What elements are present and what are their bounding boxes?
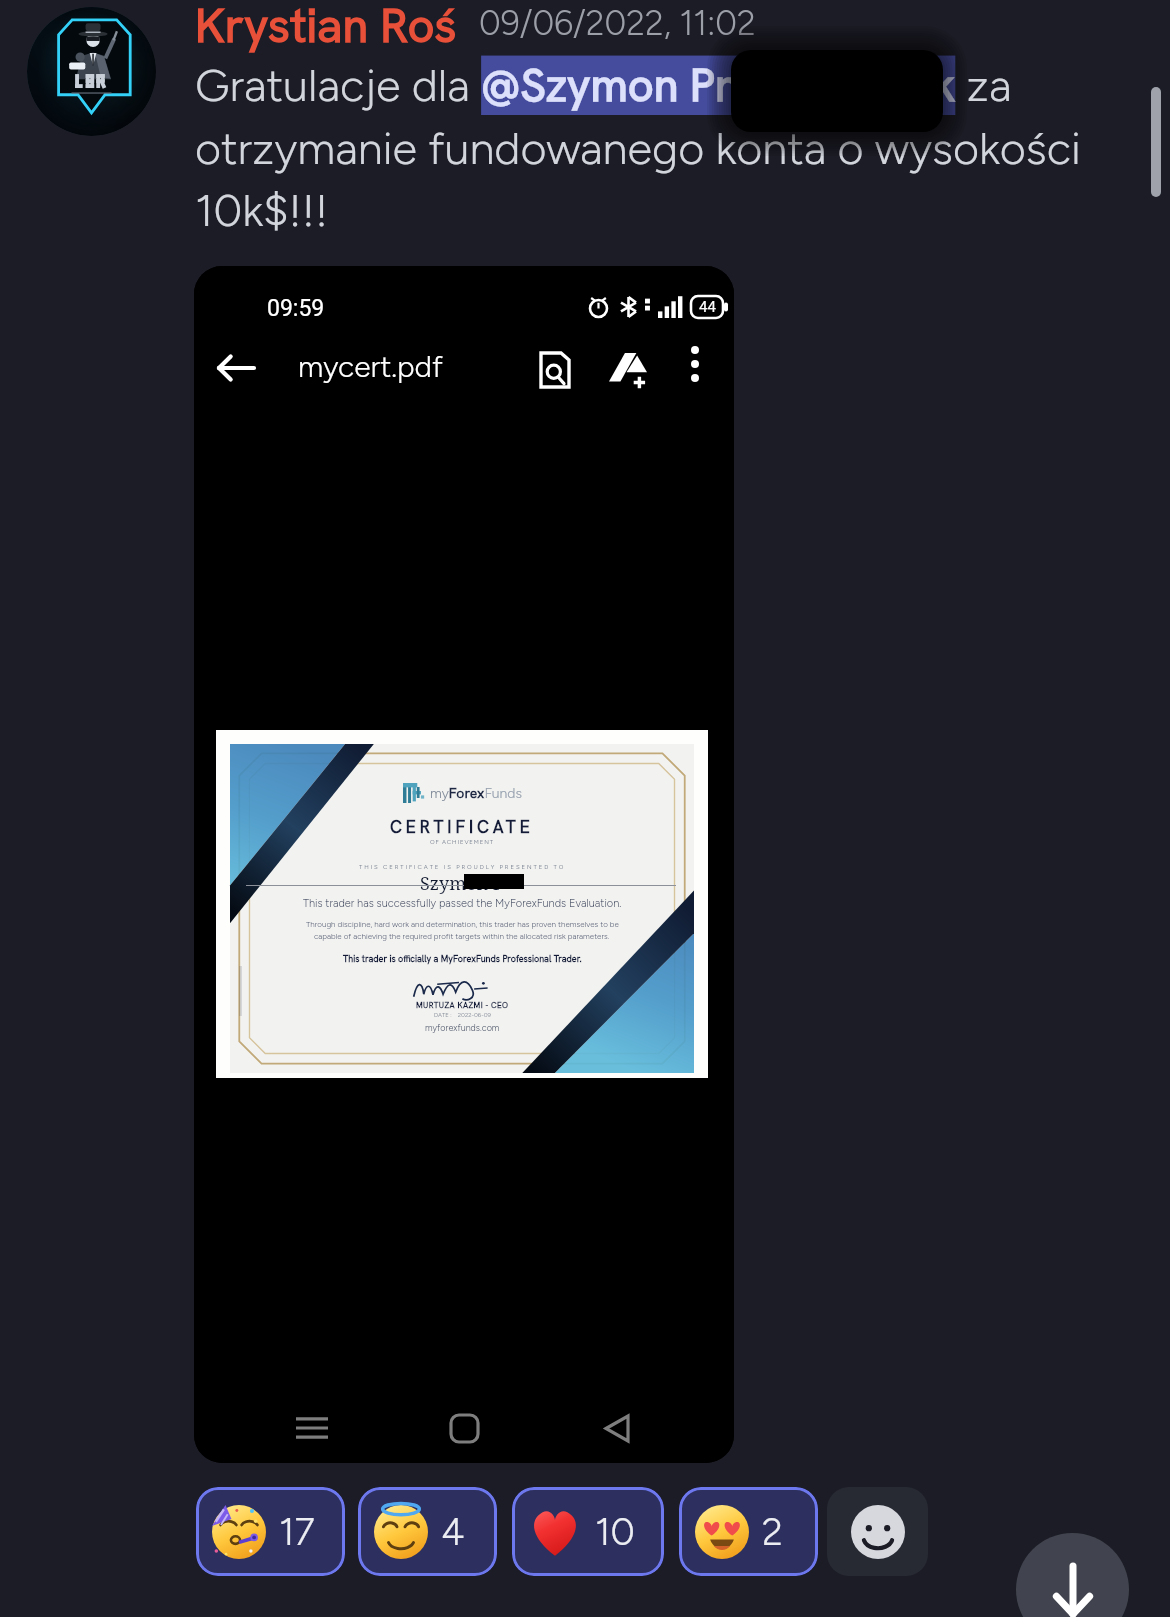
button[interactable]: Scroll to bottom <box>1016 1533 1129 1617</box>
staticText: 09/06/2022, 11:02 <box>479 3 756 44</box>
staticText: 09:59 <box>267 295 325 322</box>
staticText: Krystian Roś <box>195 0 457 56</box>
staticText: 44 <box>699 298 716 316</box>
staticText: mycert.pdf <box>298 348 443 384</box>
staticText: Through discipline, hard work and determ… <box>306 919 619 929</box>
button[interactable]: 17 <box>196 1487 345 1576</box>
button[interactable]: Back <box>582 1393 652 1463</box>
button[interactable]: Recent apps <box>277 1393 347 1463</box>
button[interactable]: Krystian Roś avatar <box>27 7 156 136</box>
button[interactable]: Home <box>429 1393 499 1463</box>
staticText: MURTUZA KAZMI - CEO <box>416 1000 509 1010</box>
button[interactable]: 10 <box>512 1487 664 1576</box>
staticText: 4 <box>441 1509 465 1555</box>
staticText: capable of achieving the required profit… <box>314 931 610 941</box>
staticText: THIS CERTIFICATE IS PROUDLY PRESENTED TO <box>359 863 566 870</box>
staticText: 10 <box>595 1509 635 1555</box>
staticText: OF ACHIEVEMENT <box>430 838 494 845</box>
button[interactable]: Find in document <box>521 336 589 404</box>
staticText: DATE : 2022-06-09 <box>434 1011 491 1018</box>
button[interactable]: Save to Drive <box>594 336 662 404</box>
button[interactable]: Add reaction <box>827 1487 928 1576</box>
staticText: Szymon P <box>420 871 504 896</box>
staticText: CERTIFICATE <box>390 816 534 838</box>
staticText: This trader has successfully passed the … <box>303 897 622 910</box>
button[interactable]: 2 <box>679 1487 818 1576</box>
staticText: Gratulacje dla @Szymon Prazuchowsk za ot… <box>195 56 1105 237</box>
button[interactable]: 4 <box>358 1487 497 1576</box>
button[interactable]: Attached image <box>194 266 734 1463</box>
button[interactable]: More options <box>667 336 723 392</box>
staticText: myforexfunds.com <box>425 1022 500 1033</box>
staticText: This trader is officially a MyForexFunds… <box>343 953 582 965</box>
staticText: 2 <box>762 1509 783 1555</box>
staticText: 17 <box>279 1509 315 1555</box>
staticText: myForexFunds <box>430 784 522 802</box>
button[interactable]: Back <box>200 332 272 404</box>
